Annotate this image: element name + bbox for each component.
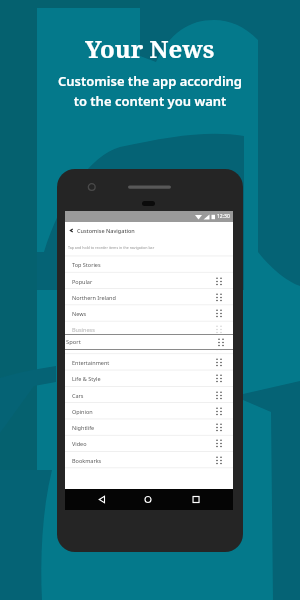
staticText: Top Stories xyxy=(72,261,101,268)
staticText: Customise Navigation xyxy=(77,227,135,234)
other: Reorder xyxy=(216,293,222,301)
button[interactable]: Opinion xyxy=(65,403,233,419)
button[interactable]: Back xyxy=(65,222,233,239)
other: Reorder xyxy=(216,358,222,366)
staticText: Northern Ireland xyxy=(72,294,116,301)
button[interactable]: Sport xyxy=(65,334,233,350)
staticText: Your News xyxy=(85,32,215,65)
staticText: Bookmarks xyxy=(72,457,102,464)
other: Reorder xyxy=(216,277,222,285)
staticText: Popular xyxy=(72,278,93,285)
staticText: Entertainment xyxy=(72,359,110,366)
other: Reorder xyxy=(216,309,222,317)
staticText: 12:30 xyxy=(217,213,230,220)
other: Reorder xyxy=(216,325,222,333)
button[interactable]: Top Stories xyxy=(65,256,233,272)
other: Reorder xyxy=(216,391,222,399)
staticText: Cars xyxy=(72,392,84,399)
button[interactable]: Popular xyxy=(65,273,233,289)
button[interactable]: Bookmarks xyxy=(65,452,233,468)
button[interactable]: Northern Ireland xyxy=(65,289,233,305)
other: Reorder xyxy=(216,342,222,350)
other: Reorder xyxy=(216,439,222,447)
other: Reorder xyxy=(216,456,222,464)
button[interactable]: Business xyxy=(65,321,233,337)
other: Reorder xyxy=(216,423,222,431)
other: Reorder xyxy=(218,338,224,346)
button[interactable]: Nightlife xyxy=(65,419,233,435)
staticText: Business xyxy=(72,326,95,333)
staticText: Sport xyxy=(66,338,81,346)
button[interactable]: Video xyxy=(65,435,233,451)
staticText: Life & Style xyxy=(72,375,101,382)
other: Reorder xyxy=(216,374,222,382)
other: Back xyxy=(69,228,74,233)
other: Reorder xyxy=(216,407,222,415)
staticText: Customise the app according to the conte… xyxy=(58,72,242,110)
staticText: News xyxy=(72,310,87,317)
button[interactable]: Sport xyxy=(65,338,233,354)
staticText: Opinion xyxy=(72,408,93,415)
button[interactable]: Cars xyxy=(65,387,233,403)
button[interactable]: Entertainment xyxy=(65,354,233,370)
staticText: Nightlife xyxy=(72,424,95,431)
staticText: Tap and hold to reorder items in the nav… xyxy=(68,245,155,250)
staticText: Video xyxy=(72,440,87,447)
staticText: Sport xyxy=(72,343,86,350)
button[interactable]: News xyxy=(65,305,233,321)
button[interactable]: Life & Style xyxy=(65,370,233,386)
